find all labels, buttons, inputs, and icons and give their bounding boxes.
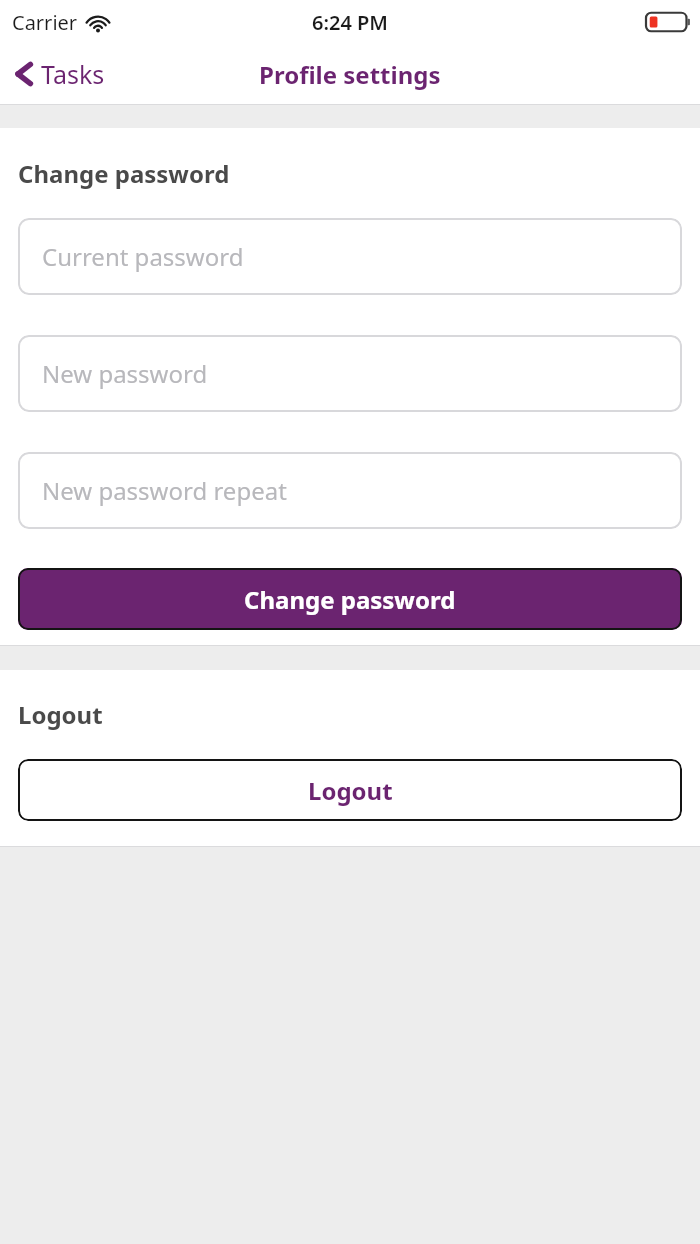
other: Battery low (646, 11, 692, 33)
staticText: 6:24 PM (312, 9, 388, 36)
staticText: Tasks (41, 57, 105, 91)
staticText: Logout (308, 774, 393, 807)
staticText: New password repeat (42, 474, 287, 507)
staticText: Carrier (12, 9, 78, 36)
staticText: Change password (18, 157, 230, 190)
button[interactable]: Logout (18, 759, 682, 821)
staticText: Profile settings (259, 58, 441, 91)
button[interactable]: New password (18, 335, 682, 412)
button[interactable]: Change password (18, 568, 682, 630)
button[interactable]: Current password (18, 218, 682, 295)
button[interactable]: Tasks (0, 49, 117, 99)
staticText: Current password (42, 240, 244, 273)
button[interactable]: New password repeat (18, 452, 682, 529)
other: Wi-Fi (86, 14, 110, 32)
staticText: New password (42, 357, 208, 390)
staticText: Logout (18, 698, 103, 731)
staticText: Change password (244, 583, 456, 616)
